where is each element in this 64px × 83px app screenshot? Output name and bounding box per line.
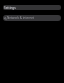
button[interactable]: Search [3, 15, 61, 21]
button[interactable]: Settings [3, 5, 61, 10]
other: Search [4, 17, 7, 20]
staticText: Network & internet [7, 16, 35, 20]
staticText: Settings [4, 6, 16, 10]
